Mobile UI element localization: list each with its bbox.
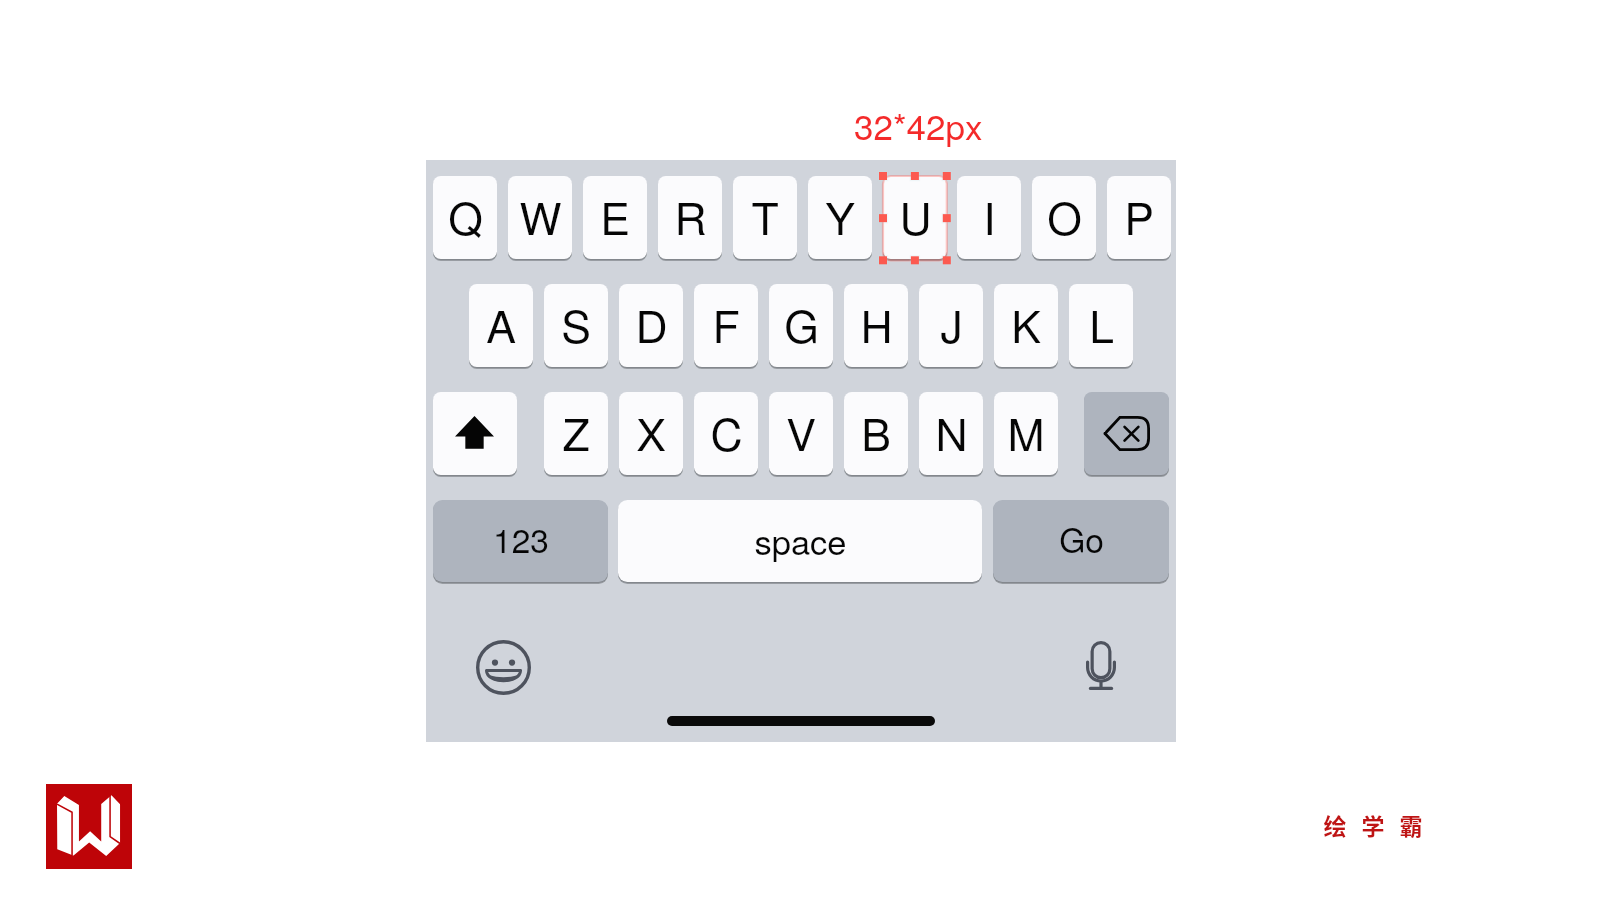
staticText: B [861, 400, 891, 464]
staticText: O [1047, 184, 1082, 248]
button[interactable]: O [1032, 176, 1096, 259]
button[interactable]: F [694, 284, 758, 367]
button[interactable]: Huixueba logo [46, 784, 132, 869]
button[interactable]: S [544, 284, 608, 367]
staticText: N [935, 400, 968, 464]
staticText: J [940, 292, 963, 356]
staticText: F [712, 292, 740, 356]
staticText: E [600, 184, 630, 248]
button[interactable]: Z [544, 392, 608, 475]
button[interactable]: Q [433, 176, 497, 259]
staticText: D [635, 292, 668, 356]
staticText: M [1007, 400, 1045, 464]
staticText: Go [1059, 515, 1104, 563]
staticText: C [710, 400, 743, 464]
button[interactable]: V [769, 392, 833, 475]
button[interactable]: I [957, 176, 1021, 259]
button[interactable]: Go [993, 500, 1169, 582]
button[interactable]: E [583, 176, 647, 259]
button[interactable]: Voice input [1085, 641, 1117, 691]
staticText: 123 [493, 515, 549, 563]
staticText: H [860, 292, 893, 356]
button[interactable]: 123 [433, 500, 608, 582]
staticText: T [751, 184, 779, 248]
staticText: X [636, 400, 666, 464]
button[interactable]: Emoji keyboard [476, 640, 531, 695]
button[interactable]: C [694, 392, 758, 475]
button[interactable]: K [994, 284, 1058, 367]
staticText: A [486, 292, 516, 356]
staticText: L [1089, 292, 1114, 356]
button[interactable]: G [769, 284, 833, 367]
staticText: R [674, 184, 707, 248]
button[interactable]: H [844, 284, 908, 367]
staticText: I [983, 184, 996, 248]
button[interactable]: R [658, 176, 722, 259]
button[interactable]: D [619, 284, 683, 367]
button[interactable]: Backspace [1103, 416, 1150, 451]
button[interactable]: Y [808, 176, 872, 259]
button[interactable]: A [469, 284, 533, 367]
button[interactable]: Shift [455, 416, 494, 450]
button[interactable]: U [883, 176, 947, 259]
button[interactable]: space [618, 500, 982, 582]
button[interactable]: N [919, 392, 983, 475]
staticText: Y [825, 184, 855, 248]
button[interactable]: Shift [433, 392, 517, 475]
staticText: 32*42px [854, 100, 983, 150]
staticText: V [786, 400, 816, 464]
button[interactable]: T [733, 176, 797, 259]
button[interactable]: J [919, 284, 983, 367]
button[interactable]: X [619, 392, 683, 475]
button[interactable]: W [508, 176, 572, 259]
staticText: U [899, 184, 932, 248]
button[interactable]: P [1107, 176, 1171, 259]
staticText: K [1011, 292, 1041, 356]
staticText: space [754, 515, 847, 564]
button[interactable]: Backspace [1084, 392, 1169, 475]
button[interactable]: M [994, 392, 1058, 475]
staticText: Z [562, 400, 590, 464]
button[interactable]: B [844, 392, 908, 475]
staticText: S [561, 292, 591, 356]
staticText: G [784, 292, 819, 356]
staticText: Q [448, 184, 483, 248]
button[interactable]: L [1069, 284, 1133, 367]
staticText: 绘学霸 [1316, 808, 1430, 841]
staticText: P [1124, 184, 1154, 248]
staticText: W [519, 184, 562, 248]
